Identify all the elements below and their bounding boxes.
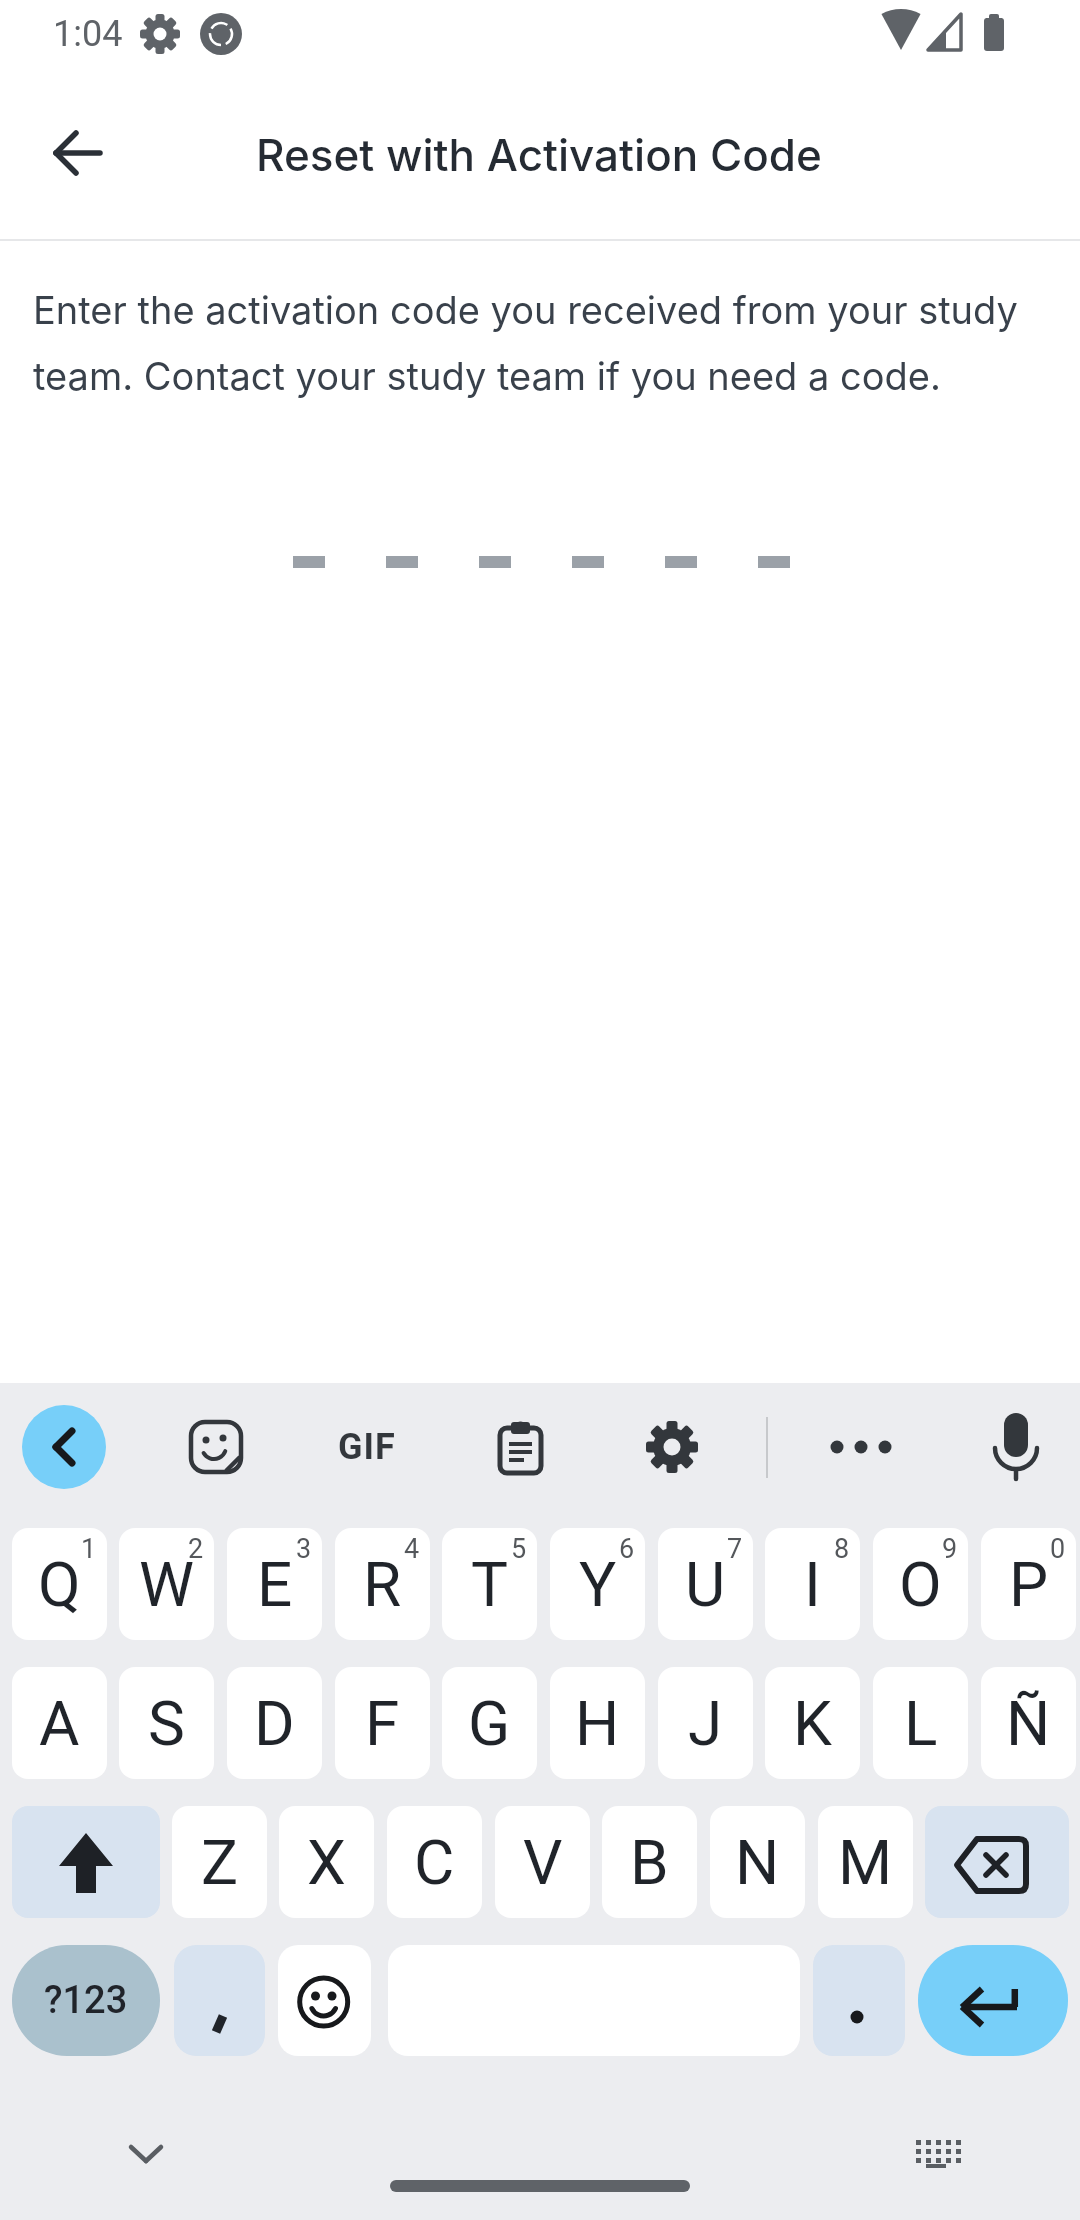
staticText: Reset with Activation Code — [256, 128, 822, 181]
staticText: W — [139, 1548, 195, 1621]
button[interactable]: C — [387, 1806, 482, 1918]
button[interactable]: G — [442, 1667, 537, 1779]
button[interactable]: N — [710, 1806, 805, 1918]
button[interactable]: Q — [12, 1528, 107, 1640]
button[interactable]: H — [550, 1667, 645, 1779]
button[interactable]: E — [227, 1528, 322, 1640]
staticText: B — [630, 1826, 669, 1899]
button[interactable] — [813, 1945, 905, 2056]
button[interactable] — [827, 1433, 895, 1461]
staticText: H — [575, 1687, 620, 1760]
button[interactable]: D — [227, 1667, 322, 1779]
button[interactable] — [912, 2136, 960, 2170]
staticText: 8 — [834, 1533, 850, 1565]
staticText: Y — [579, 1548, 617, 1621]
button[interactable]: B — [602, 1806, 697, 1918]
staticText: E — [257, 1548, 293, 1621]
staticText: P — [1009, 1548, 1049, 1621]
staticText: 4 — [404, 1533, 420, 1565]
button[interactable] — [188, 1419, 244, 1475]
button[interactable] — [990, 1411, 1042, 1483]
staticText: A — [39, 1687, 80, 1760]
staticText: O — [899, 1548, 942, 1621]
button[interactable]: GIF — [327, 1424, 407, 1470]
button[interactable]: A — [12, 1667, 107, 1779]
staticText: G — [468, 1687, 511, 1760]
button[interactable] — [278, 1945, 371, 2056]
staticText: 7 — [727, 1533, 743, 1565]
button[interactable] — [126, 2140, 166, 2168]
staticText: Enter the activation code you received f… — [33, 287, 1018, 399]
staticText: K — [793, 1687, 832, 1760]
button[interactable] — [12, 1806, 160, 1918]
staticText: ?123 — [44, 1978, 128, 2023]
button[interactable]: Y — [550, 1528, 645, 1640]
staticText: Q — [38, 1548, 81, 1621]
staticText: F — [365, 1687, 400, 1760]
button[interactable]: ?123 — [12, 1945, 160, 2056]
button[interactable]: I — [765, 1528, 860, 1640]
staticText: R — [363, 1548, 402, 1621]
staticText: S — [148, 1687, 185, 1760]
button[interactable] — [925, 1806, 1069, 1918]
staticText: 1 — [81, 1533, 97, 1565]
staticText: 3 — [296, 1533, 312, 1565]
button[interactable] — [40, 115, 116, 191]
button[interactable]: O — [873, 1528, 968, 1640]
staticText: N — [735, 1826, 780, 1899]
staticText: L — [904, 1687, 938, 1760]
staticText: 1:04 — [53, 13, 123, 55]
button[interactable] — [174, 1945, 265, 2056]
staticText: Z — [201, 1826, 239, 1899]
button[interactable] — [495, 1417, 547, 1479]
button[interactable]: J — [658, 1667, 753, 1779]
staticText: C — [414, 1826, 455, 1899]
button[interactable]: U — [658, 1528, 753, 1640]
staticText: GIF — [338, 1426, 396, 1468]
button[interactable]: Z — [172, 1806, 267, 1918]
staticText: M — [838, 1826, 893, 1899]
staticText: 5 — [511, 1533, 527, 1565]
button[interactable]: F — [335, 1667, 430, 1779]
button[interactable]: R — [335, 1528, 430, 1640]
staticText: X — [307, 1826, 346, 1899]
staticText: J — [688, 1687, 723, 1760]
button[interactable]: P — [981, 1528, 1076, 1640]
button[interactable]: K — [765, 1667, 860, 1779]
staticText: U — [685, 1548, 726, 1621]
button[interactable]: Ñ — [981, 1667, 1076, 1779]
button[interactable]: L — [873, 1667, 968, 1779]
staticText: I — [804, 1548, 821, 1621]
staticText: T — [471, 1548, 508, 1621]
button[interactable] — [22, 1405, 106, 1489]
staticText: Ñ — [1006, 1687, 1051, 1760]
staticText: 6 — [619, 1533, 635, 1565]
button[interactable] — [644, 1419, 700, 1475]
staticText: D — [254, 1687, 295, 1760]
staticText: 2 — [188, 1533, 204, 1565]
button[interactable] — [918, 1945, 1068, 2056]
button[interactable]: S — [119, 1667, 214, 1779]
button[interactable]: V — [495, 1806, 590, 1918]
staticText: 0 — [1050, 1533, 1066, 1565]
button[interactable]: X — [279, 1806, 374, 1918]
button[interactable]: W — [119, 1528, 214, 1640]
button[interactable]: T — [442, 1528, 537, 1640]
staticText: 9 — [942, 1533, 958, 1565]
staticText: V — [523, 1826, 563, 1899]
button[interactable]: M — [818, 1806, 913, 1918]
